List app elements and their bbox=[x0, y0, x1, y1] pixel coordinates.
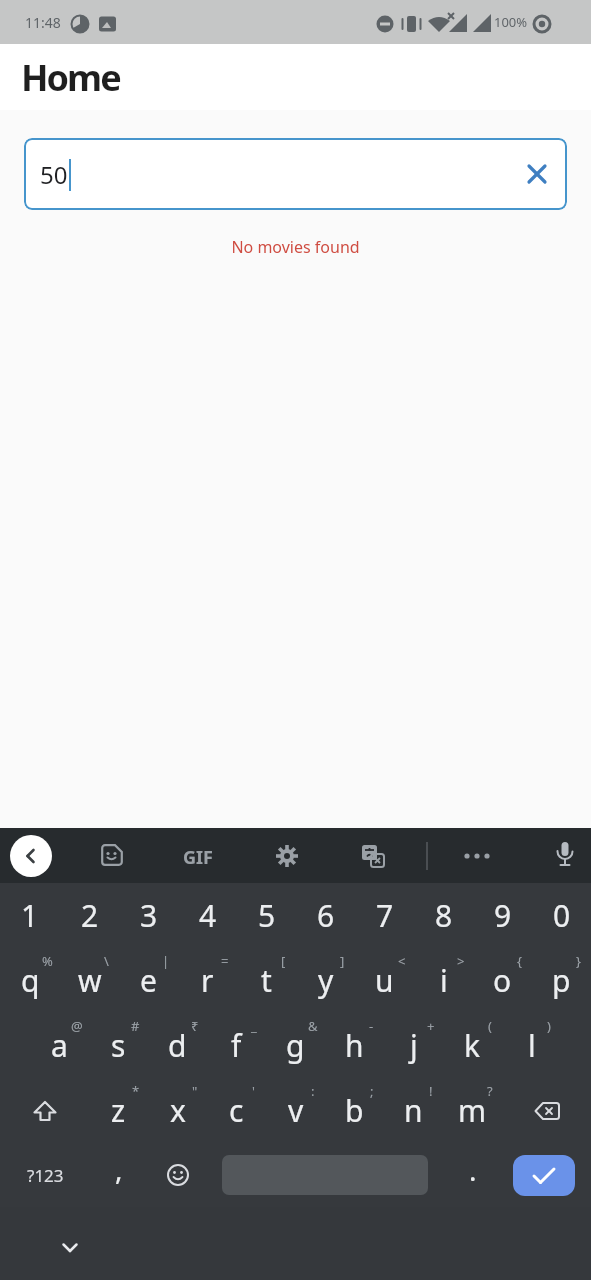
button[interactable] bbox=[362, 845, 385, 868]
button[interactable] bbox=[502, 1078, 591, 1143]
staticText: 7 bbox=[376, 895, 394, 936]
button[interactable]: c bbox=[207, 1078, 266, 1143]
button[interactable]: x bbox=[148, 1078, 207, 1143]
button[interactable]: 3 bbox=[119, 883, 178, 948]
button[interactable]: s bbox=[89, 1013, 148, 1078]
staticText: ₹ bbox=[191, 1017, 199, 1035]
button[interactable]: , bbox=[90, 1143, 148, 1207]
button[interactable]: 4 bbox=[178, 883, 237, 948]
staticText: " bbox=[192, 1082, 198, 1100]
button[interactable]: h bbox=[325, 1013, 384, 1078]
button[interactable]: y bbox=[296, 948, 355, 1013]
button[interactable]: k bbox=[443, 1013, 502, 1078]
staticText: { bbox=[517, 952, 522, 970]
button[interactable] bbox=[207, 1143, 443, 1207]
staticText: t bbox=[261, 960, 272, 1001]
button[interactable]: 0 bbox=[532, 883, 591, 948]
staticText: k bbox=[464, 1025, 481, 1066]
staticText: ?123 bbox=[27, 1164, 64, 1187]
button[interactable]: q bbox=[0, 948, 60, 1013]
button[interactable]: o bbox=[473, 948, 532, 1013]
staticText: h bbox=[345, 1025, 364, 1066]
button[interactable] bbox=[0, 1078, 89, 1143]
staticText: m bbox=[458, 1090, 487, 1131]
staticText: i bbox=[440, 960, 448, 1001]
staticText: Home bbox=[21, 53, 120, 102]
staticText: v bbox=[288, 1090, 304, 1131]
staticText: @ bbox=[71, 1017, 83, 1035]
staticText: _ bbox=[251, 1017, 257, 1035]
button[interactable]: e bbox=[119, 948, 178, 1013]
staticText: ) bbox=[547, 1017, 551, 1035]
button[interactable]: l bbox=[502, 1013, 561, 1078]
button[interactable]: i bbox=[414, 948, 473, 1013]
staticText: ! bbox=[429, 1082, 433, 1100]
button[interactable]: GIF bbox=[183, 845, 213, 870]
staticText: q bbox=[21, 960, 40, 1001]
staticText: < bbox=[398, 952, 406, 970]
staticText: 1 bbox=[21, 895, 39, 936]
staticText: 0 bbox=[553, 895, 571, 936]
button[interactable]: m bbox=[443, 1078, 502, 1143]
button[interactable] bbox=[464, 852, 490, 860]
staticText: , bbox=[115, 1150, 123, 1188]
staticText: l bbox=[528, 1025, 536, 1066]
button[interactable]: f bbox=[207, 1013, 266, 1078]
staticText: w bbox=[78, 960, 102, 1001]
staticText: - bbox=[369, 1017, 374, 1035]
staticText: ; bbox=[370, 1082, 374, 1100]
staticText: 6 bbox=[317, 895, 335, 936]
staticText: + bbox=[427, 1017, 435, 1035]
staticText: p bbox=[552, 960, 571, 1001]
button[interactable] bbox=[275, 844, 299, 868]
button[interactable]: d bbox=[148, 1013, 207, 1078]
staticText: z bbox=[111, 1090, 126, 1131]
button[interactable] bbox=[101, 844, 125, 868]
staticText: o bbox=[493, 960, 512, 1001]
staticText: 100% bbox=[494, 13, 528, 31]
button[interactable]: w bbox=[60, 948, 119, 1013]
button[interactable]: u bbox=[355, 948, 414, 1013]
button[interactable]: 1 bbox=[0, 883, 60, 948]
button[interactable] bbox=[556, 842, 574, 869]
button[interactable]: b bbox=[325, 1078, 384, 1143]
button[interactable]: 9 bbox=[473, 883, 532, 948]
button[interactable]: 6 bbox=[296, 883, 355, 948]
button[interactable]: g bbox=[266, 1013, 325, 1078]
staticText: r bbox=[201, 960, 214, 1001]
button[interactable]: 7 bbox=[355, 883, 414, 948]
staticText: u bbox=[375, 960, 394, 1001]
button[interactable]: n bbox=[384, 1078, 443, 1143]
staticText: 11:48 bbox=[25, 13, 61, 32]
button[interactable] bbox=[502, 1143, 591, 1207]
staticText: y bbox=[318, 960, 334, 1001]
staticText: f bbox=[231, 1025, 242, 1066]
staticText: * bbox=[132, 1082, 140, 1100]
button[interactable] bbox=[10, 835, 52, 877]
button[interactable]: a bbox=[30, 1013, 89, 1078]
button[interactable]: 2 bbox=[60, 883, 119, 948]
button[interactable]: 5 bbox=[237, 883, 296, 948]
button[interactable]: r bbox=[178, 948, 237, 1013]
staticText: c bbox=[229, 1090, 244, 1131]
button[interactable]: 8 bbox=[414, 883, 473, 948]
button[interactable]: t bbox=[237, 948, 296, 1013]
button[interactable] bbox=[528, 165, 546, 183]
button[interactable] bbox=[62, 1243, 78, 1253]
staticText: g bbox=[286, 1025, 305, 1066]
button[interactable]: j bbox=[384, 1013, 443, 1078]
button[interactable]: . bbox=[443, 1143, 502, 1207]
button[interactable]: z bbox=[89, 1078, 148, 1143]
button[interactable] bbox=[148, 1143, 207, 1207]
staticText: & bbox=[308, 1017, 318, 1035]
button[interactable]: p bbox=[532, 948, 591, 1013]
staticText: ? bbox=[487, 1082, 493, 1100]
staticText: No movies found bbox=[0, 236, 591, 258]
staticText: [ bbox=[281, 952, 286, 970]
button[interactable]: v bbox=[266, 1078, 325, 1143]
staticText: x bbox=[170, 1090, 186, 1131]
button[interactable]: 50 bbox=[24, 138, 567, 210]
staticText: a bbox=[51, 1025, 68, 1066]
staticText: % bbox=[42, 952, 53, 970]
button[interactable]: ?123 bbox=[0, 1143, 90, 1207]
